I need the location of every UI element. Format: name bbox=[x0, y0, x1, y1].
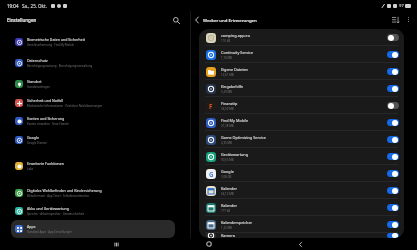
staticText: Standortanfragen bbox=[27, 85, 50, 89]
staticText: 97 bbox=[399, 3, 404, 9]
button[interactable]: Toggle Find My Mobile bbox=[387, 119, 399, 126]
staticText: 110 kB bbox=[221, 39, 231, 43]
button[interactable]: Google bbox=[11, 129, 175, 150]
staticText: Apps bbox=[27, 224, 36, 229]
button[interactable]: Continuity Service bbox=[199, 46, 404, 63]
button[interactable]: Gerätewartung bbox=[199, 148, 404, 165]
button[interactable]: Sicherheit und Notfall bbox=[11, 94, 175, 112]
button[interactable]: Kamera bbox=[199, 233, 404, 238]
staticText: 64,13 MB bbox=[221, 192, 234, 196]
staticText: Kamera bbox=[221, 233, 235, 238]
button[interactable]: Toggle Kalenderspeicher bbox=[387, 221, 399, 228]
staticText: 36,59 MB bbox=[221, 107, 234, 111]
button[interactable]: Eigene Dateien bbox=[199, 63, 404, 80]
button[interactable]: Toggle Kalender bbox=[387, 187, 399, 194]
button[interactable]: Sortieren bbox=[390, 14, 402, 26]
staticText: Digitales Wohlbefinden und Kindersicheru… bbox=[27, 188, 102, 193]
staticText: Eingabehilfe bbox=[221, 84, 244, 89]
button[interactable]: Toggle camping-app.eu bbox=[387, 34, 399, 41]
staticText: Biometrische Daten und Sicherheit bbox=[27, 37, 85, 42]
staticText: Wecker und Erinnerungen bbox=[203, 17, 257, 23]
staticText: 777 kB bbox=[221, 209, 231, 213]
button[interactable]: Toggle Eigene Dateien bbox=[387, 68, 399, 75]
button[interactable]: Standort bbox=[11, 73, 175, 94]
button[interactable]: Suchen bbox=[170, 14, 182, 26]
staticText: Berechtigungsnutzung · Berechtigungsverw… bbox=[27, 64, 93, 68]
staticText: Labs bbox=[27, 167, 33, 171]
staticText: G bbox=[209, 170, 214, 178]
staticText: Continuity Service bbox=[221, 50, 254, 55]
staticText: 5,29 MB bbox=[221, 90, 232, 94]
staticText: 1,74 MB bbox=[221, 56, 232, 60]
button[interactable]: Find My Mobile bbox=[199, 114, 404, 131]
button[interactable]: Eingabehilfe bbox=[199, 80, 404, 97]
button[interactable]: camping-app.eu bbox=[199, 29, 404, 46]
staticText: Google Dienste bbox=[27, 141, 47, 145]
staticText: Bildschirmzeit · App-Timer · Schlafensze… bbox=[27, 194, 89, 198]
staticText: Eigene Dateien bbox=[221, 67, 248, 72]
staticText: Sicherheit und Notfall bbox=[27, 98, 64, 103]
button[interactable]: Game Optimizing Service bbox=[199, 131, 404, 148]
staticText: Datenschutz bbox=[27, 58, 48, 63]
button[interactable]: G bbox=[199, 165, 404, 182]
button[interactable]: Mehr Optionen bbox=[403, 14, 414, 25]
staticText: Erweiterte Funktionen bbox=[27, 161, 64, 166]
staticText: Konten und Sicherung bbox=[27, 116, 65, 121]
button[interactable]: Toggle Kamera bbox=[387, 233, 399, 238]
staticText: 3,08 GB bbox=[221, 175, 232, 179]
staticText: Kalender bbox=[221, 203, 237, 208]
button[interactable]: Apps bbox=[11, 220, 175, 238]
staticText: Gerätewartung bbox=[221, 152, 249, 157]
button[interactable]: Kalender bbox=[199, 182, 404, 199]
staticText: 12,61 MB bbox=[221, 73, 234, 77]
staticText: Game Optimizing Service bbox=[221, 135, 266, 140]
staticText: Standort bbox=[27, 79, 42, 84]
button[interactable]: Startbildschirm bbox=[201, 238, 217, 250]
staticText: Google bbox=[27, 135, 39, 140]
staticText: Einstellungen bbox=[7, 17, 37, 23]
staticText: camping-app.eu bbox=[221, 33, 251, 38]
button[interactable]: Kalenderspeicher bbox=[199, 216, 404, 233]
button[interactable]: F bbox=[199, 97, 404, 114]
button[interactable]: Toggle Google bbox=[387, 170, 399, 177]
button[interactable]: Toggle Eingabehilfe bbox=[387, 85, 399, 92]
button[interactable]: Akku und Gerätewartung bbox=[11, 202, 175, 220]
staticText: F bbox=[209, 102, 213, 110]
button[interactable]: Toggle Game Optimizing Service bbox=[387, 136, 399, 143]
staticText: 1,23 MB bbox=[221, 226, 232, 230]
staticText: Kalender bbox=[221, 186, 237, 191]
staticText: Google bbox=[221, 169, 234, 174]
staticText: Standard-Apps · App-Einstellungen bbox=[27, 230, 72, 234]
staticText: Akku und Gerätewartung bbox=[27, 206, 69, 211]
button[interactable]: Biometrische Daten und Sicherheit bbox=[11, 31, 175, 52]
button[interactable]: Erweiterte Funktionen bbox=[11, 156, 175, 175]
staticText: Find My Mobile bbox=[221, 118, 249, 123]
button[interactable]: Konten und Sicherung bbox=[11, 112, 175, 129]
button[interactable]: Zurück bbox=[192, 15, 201, 24]
button[interactable]: Zurück bbox=[292, 238, 308, 250]
button[interactable]: Toggle Kalender bbox=[387, 204, 399, 211]
button[interactable]: Toggle Gerätewartung bbox=[387, 153, 399, 160]
staticText: Sa., 25. Okt. bbox=[22, 3, 47, 9]
staticText: Speicher · Arbeitsspeicher · Gerätesiche… bbox=[27, 212, 85, 216]
staticText: 21,38 MB bbox=[221, 124, 234, 128]
button[interactable]: Toggle Continuity Service bbox=[387, 51, 399, 58]
staticText: Gesichtserkennung · Find My Mobile bbox=[27, 43, 74, 47]
button[interactable]: Toggle Finanztip bbox=[387, 102, 399, 109]
button[interactable]: Digitales Wohlbefinden und Kindersicheru… bbox=[11, 183, 175, 202]
staticText: 90,53 MB bbox=[221, 158, 234, 162]
staticText: 4,35 MB bbox=[221, 141, 232, 145]
staticText: 19:04 bbox=[7, 3, 19, 9]
staticText: Finanztip bbox=[221, 101, 238, 106]
staticText: Konten verwalten · Smart Switch bbox=[27, 122, 69, 126]
button[interactable]: Letzte Apps bbox=[108, 238, 124, 250]
staticText: Medizinische Informationen · Drahtlose N… bbox=[27, 104, 103, 108]
button[interactable]: Kalender bbox=[199, 199, 404, 216]
staticText: Kalenderspeicher bbox=[221, 220, 253, 225]
button[interactable]: Datenschutz bbox=[11, 52, 175, 73]
